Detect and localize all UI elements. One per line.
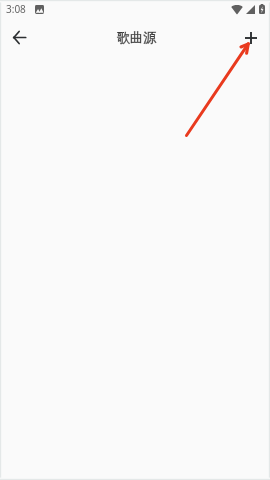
staticText: 歌曲源	[117, 29, 156, 45]
button[interactable]: Back	[4, 22, 34, 52]
staticText: 歌曲源	[117, 29, 156, 45]
staticText: 3:08	[6, 2, 26, 16]
button[interactable]: Add	[236, 23, 266, 53]
